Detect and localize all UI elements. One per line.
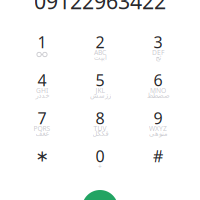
button[interactable]: 3	[129, 29, 187, 67]
staticText: صضطظ	[146, 92, 169, 99]
staticText: 7	[37, 107, 46, 129]
staticText: JKL	[95, 86, 104, 95]
staticText: ثج	[155, 54, 161, 61]
staticText: 1	[37, 31, 46, 53]
staticText: عغف	[35, 130, 49, 137]
staticText: GHI	[36, 86, 48, 95]
button[interactable]: ∗	[13, 143, 71, 181]
staticText: DEF	[152, 48, 164, 57]
staticText: منوهی	[148, 130, 167, 137]
button[interactable]: 0	[71, 143, 129, 181]
staticText: #	[153, 145, 163, 167]
staticText: 5	[95, 69, 104, 91]
button[interactable]: 1	[13, 29, 71, 67]
staticText: 8	[95, 107, 104, 129]
staticText: WXYZ	[149, 124, 167, 133]
staticText: خدذر	[35, 92, 49, 99]
staticText: 2	[95, 31, 104, 53]
staticText: ABC	[94, 48, 106, 57]
staticText: 6	[153, 69, 162, 91]
staticText: 4	[37, 69, 46, 91]
staticText: PQRS	[33, 124, 50, 133]
button[interactable]: 4	[13, 67, 71, 105]
button[interactable]: 5	[71, 67, 129, 105]
staticText: 0	[95, 145, 104, 167]
staticText: 3	[153, 31, 162, 53]
button[interactable]: 2	[71, 29, 129, 67]
staticText: ∗	[35, 147, 48, 165]
button[interactable]: 7	[13, 105, 71, 143]
staticText: ابپت	[93, 54, 106, 61]
button[interactable]: 6	[129, 67, 187, 105]
staticText: قکگل	[92, 130, 108, 137]
staticText: زژسش	[89, 92, 110, 99]
staticText: MNO	[150, 86, 166, 95]
button[interactable]: Call	[82, 190, 118, 200]
button[interactable]: 8	[71, 105, 129, 143]
button[interactable]: #	[129, 143, 187, 181]
button[interactable]: 9	[129, 105, 187, 143]
staticText: TUV	[93, 124, 106, 133]
staticText: 9	[153, 107, 162, 129]
staticText: 09122963422	[34, 0, 166, 15]
staticText: +	[98, 162, 102, 171]
